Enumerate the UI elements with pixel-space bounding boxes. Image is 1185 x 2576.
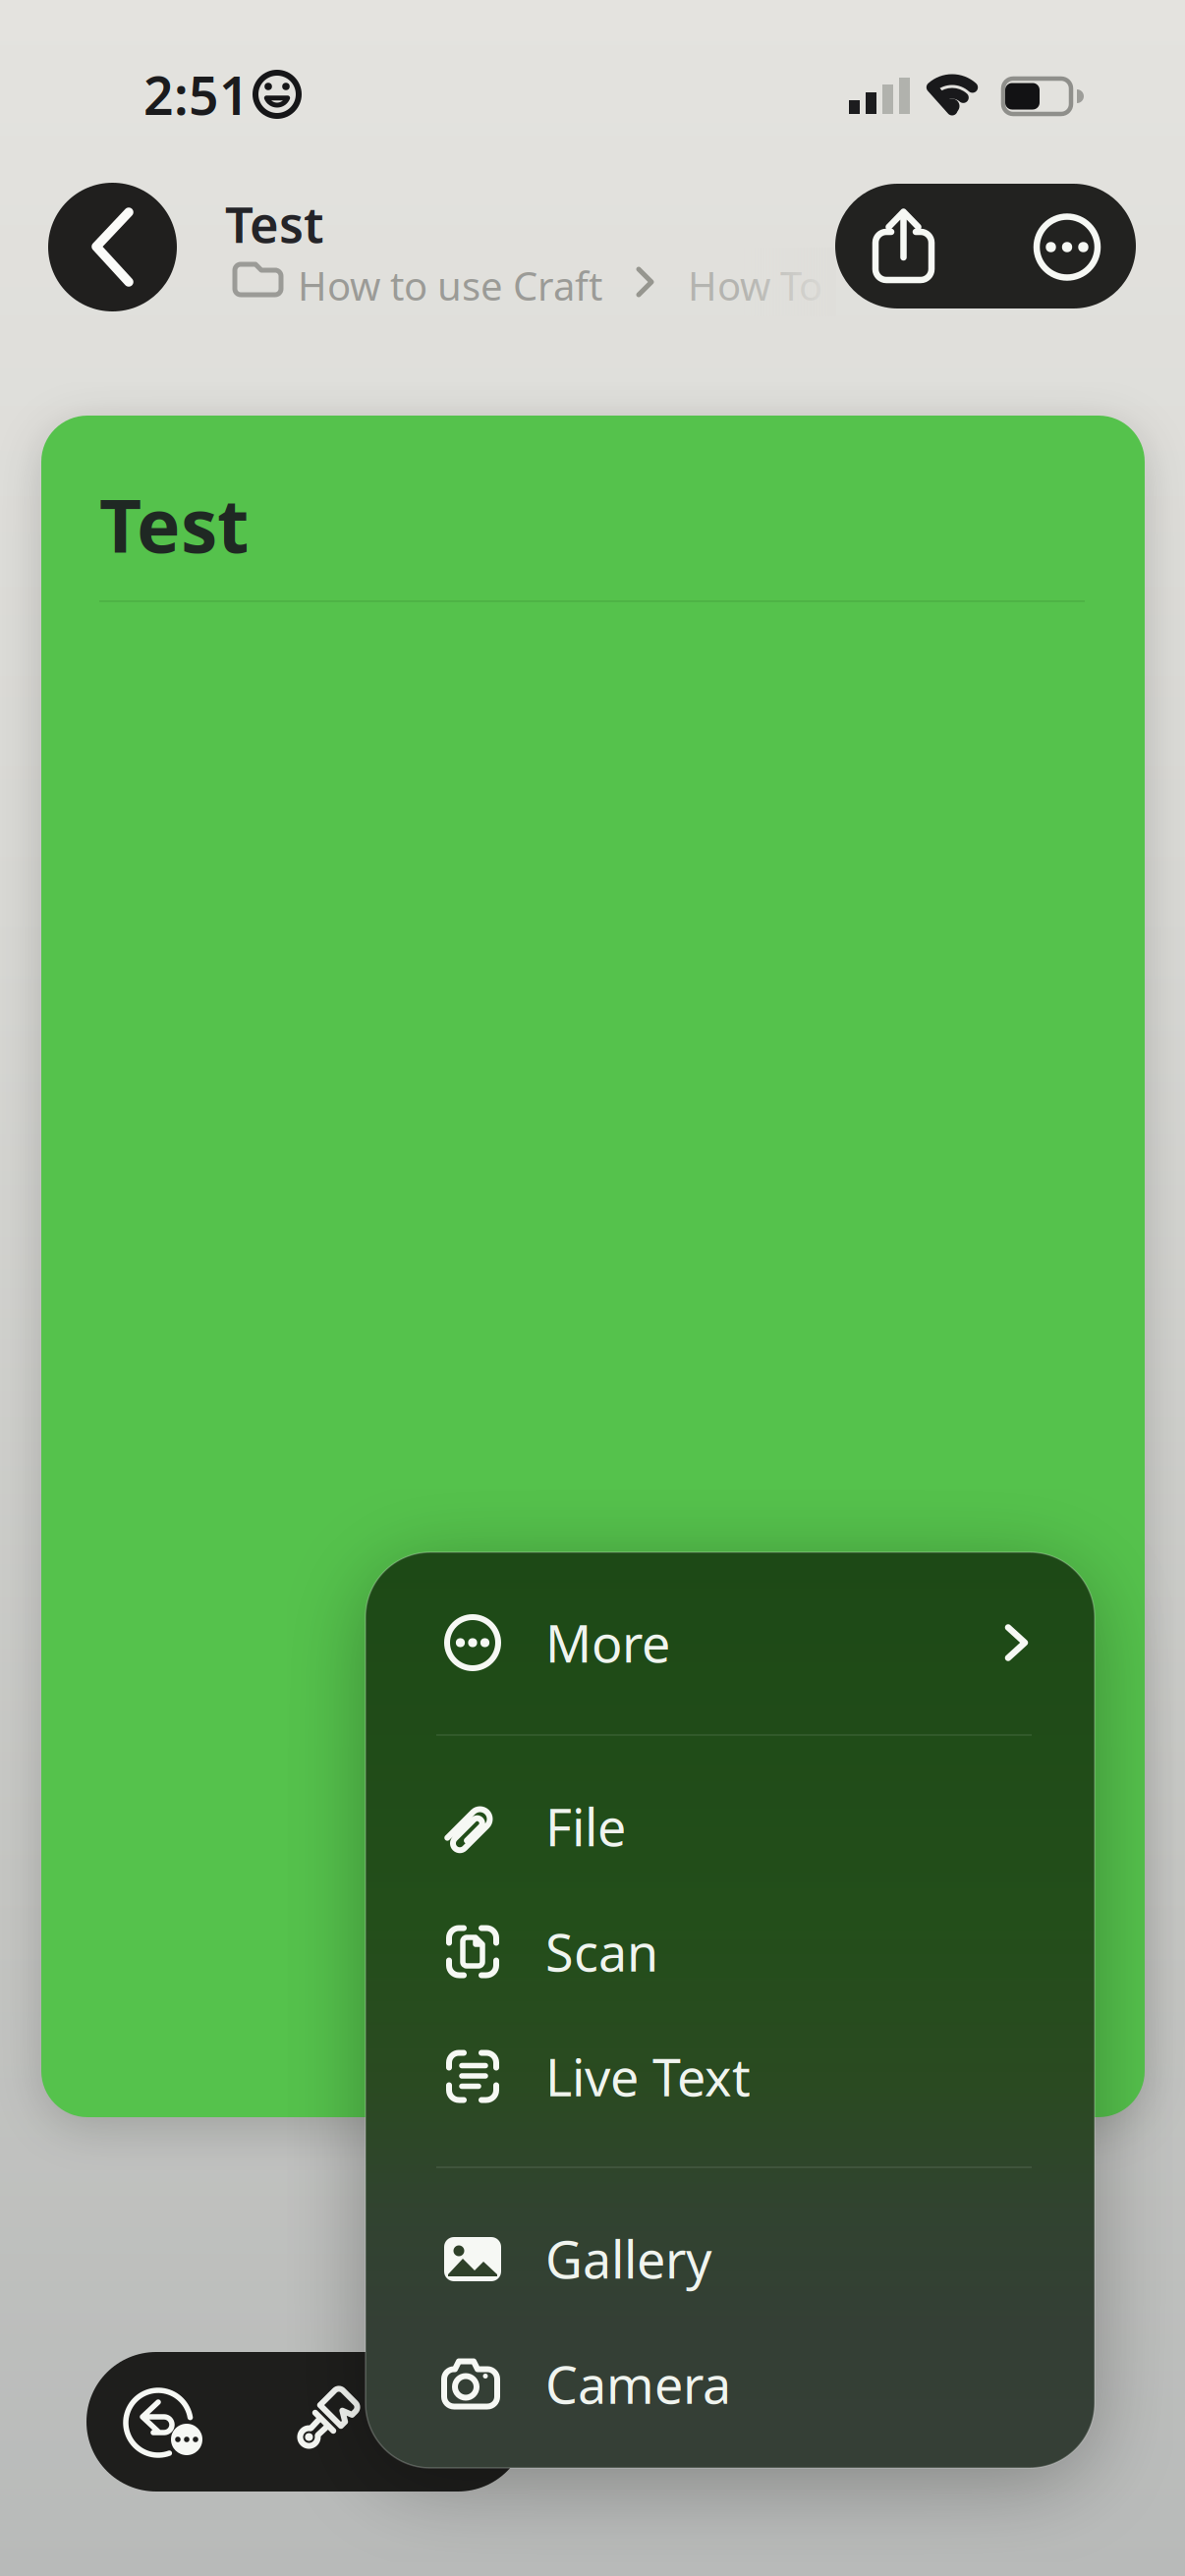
button[interactable] — [263, 2352, 381, 2492]
button[interactable]: File — [366, 1764, 1095, 1889]
button[interactable]: Live Text — [366, 2014, 1095, 2139]
staticText: Scan — [545, 1918, 658, 1986]
staticText: How To — [688, 259, 822, 312]
button[interactable] — [835, 184, 1136, 308]
button[interactable] — [48, 183, 177, 311]
button[interactable] — [86, 2352, 244, 2492]
button[interactable]: Test — [225, 191, 324, 257]
button[interactable]: Camera — [366, 2322, 1095, 2446]
staticText: Gallery — [545, 2225, 712, 2293]
button[interactable]: More — [366, 1580, 1095, 1706]
staticText: More — [545, 1609, 670, 1677]
staticText: File — [545, 1792, 626, 1860]
staticText: 2:51 — [143, 60, 250, 129]
staticText: Test — [99, 476, 249, 573]
staticText: Live Text — [545, 2043, 751, 2110]
button[interactable]: How to use Craft — [298, 259, 602, 312]
button[interactable]: Gallery — [366, 2196, 1095, 2322]
staticText: How to use Craft — [298, 259, 602, 312]
staticText: Test — [225, 191, 324, 257]
button[interactable]: Scan — [366, 1889, 1095, 2014]
staticText: Camera — [545, 2350, 731, 2418]
button[interactable] — [835, 184, 972, 308]
